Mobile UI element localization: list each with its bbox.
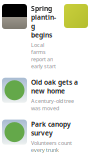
staticText: Local farms report an early start (31, 41, 56, 70)
staticText: Spring planting begins (31, 4, 56, 39)
staticText: Old oak gets a new home (31, 78, 78, 95)
staticText: Park canopy survey (31, 120, 71, 137)
button[interactable]: Old oak gets a new home (0, 78, 90, 112)
staticText: Volunteers count every trunk (31, 139, 72, 153)
staticText: A century-old tree was moved (31, 97, 74, 112)
button[interactable]: Spring planting begins (0, 4, 90, 70)
button[interactable]: Park canopy survey (0, 120, 90, 153)
